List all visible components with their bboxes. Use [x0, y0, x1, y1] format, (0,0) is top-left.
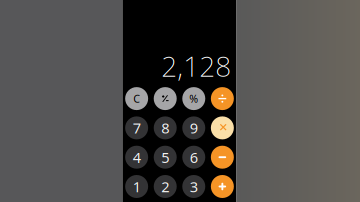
staticText: 6: [190, 147, 198, 167]
button[interactable]: 5: [154, 146, 177, 169]
staticText: %: [189, 91, 198, 106]
staticText: 9: [190, 118, 198, 138]
button[interactable]: Multiply: [211, 116, 234, 139]
button[interactable]: Plus minus: [154, 87, 177, 110]
button[interactable]: Percent: [182, 87, 205, 110]
button[interactable]: 3: [182, 175, 205, 198]
staticText: 8: [161, 118, 169, 138]
button[interactable]: Plus: [211, 175, 234, 198]
staticText: 5: [161, 147, 169, 167]
staticText: 7: [133, 118, 141, 138]
staticText: 1: [133, 177, 141, 196]
button[interactable]: Clear: [125, 87, 148, 110]
staticText: 4: [133, 147, 141, 167]
button[interactable]: 7: [125, 116, 148, 139]
button[interactable]: 1: [125, 175, 148, 198]
button[interactable]: Minus: [211, 146, 234, 169]
button[interactable]: 8: [154, 116, 177, 139]
staticText: C: [133, 91, 140, 106]
button[interactable]: 9: [182, 116, 205, 139]
button[interactable]: 4: [125, 146, 148, 169]
button[interactable]: 2: [154, 175, 177, 198]
staticText: 2,128: [161, 47, 231, 85]
button[interactable]: Divide: [211, 87, 234, 110]
button[interactable]: 6: [182, 146, 205, 169]
staticText: 3: [190, 177, 198, 196]
staticText: 2: [161, 177, 169, 196]
